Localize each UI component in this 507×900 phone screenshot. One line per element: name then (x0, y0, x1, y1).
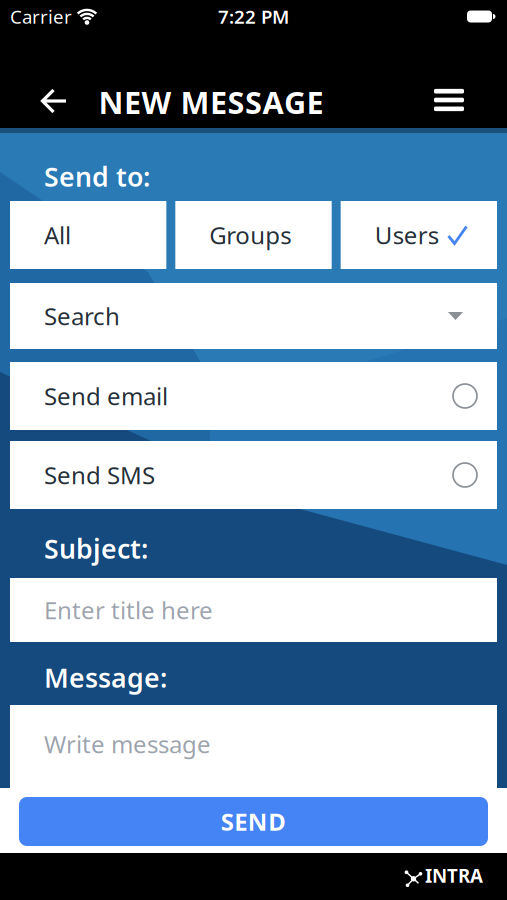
staticText: Enter title here (44, 594, 213, 626)
button[interactable]: Send email (10, 362, 497, 430)
button[interactable]: Subject, enter title here (10, 578, 497, 642)
button[interactable]: Users (341, 201, 497, 269)
staticText: Send to: (44, 159, 150, 194)
button[interactable]: Menu (434, 89, 464, 111)
button[interactable]: Search (10, 283, 497, 349)
staticText: Send email (44, 380, 168, 412)
button[interactable]: Send SMS (10, 441, 497, 509)
staticText: Message: (44, 660, 167, 695)
staticText: Subject: (44, 531, 148, 566)
staticText: All (44, 219, 71, 251)
staticText: 7:22 PM (218, 4, 289, 29)
staticText: Write message (44, 728, 211, 760)
button[interactable]: Groups (175, 201, 332, 269)
button[interactable]: All (10, 201, 166, 269)
staticText: SEND (221, 806, 286, 837)
button[interactable]: Back (41, 88, 67, 114)
button[interactable]: Message, write message (10, 705, 497, 788)
staticText: Search (44, 300, 120, 332)
staticText: Users (375, 219, 439, 251)
staticText: Carrier (10, 4, 72, 29)
staticText: INTRA (425, 863, 483, 888)
staticText: Groups (209, 219, 291, 251)
staticText: NEW MESSAGE (98, 82, 323, 122)
button[interactable]: SEND (19, 797, 488, 846)
staticText: Send SMS (44, 459, 155, 491)
